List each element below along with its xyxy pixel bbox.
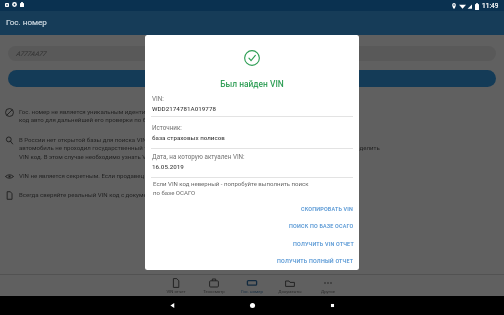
button[interactable]: Back bbox=[132, 296, 212, 315]
button[interactable]: Recents bbox=[292, 296, 372, 315]
button[interactable]: СКОПИРОВАТЬ VIN bbox=[145, 202, 359, 215]
staticText: ПОЛУЧИТЬ ПОЛНЫЙ ОТЧЕТ bbox=[277, 258, 354, 264]
button[interactable]: Другое bbox=[309, 277, 347, 294]
staticText: ПОИСК VIN ПО ГОС. НОМЕРУ bbox=[207, 75, 297, 82]
staticText: Источник: bbox=[152, 124, 182, 131]
staticText: база страховых полисов bbox=[152, 134, 225, 141]
staticText: Документы bbox=[271, 289, 309, 294]
staticText: 11:49 bbox=[482, 2, 499, 10]
staticText: ПОЛУЧИТЬ VIN ОТЧЕТ bbox=[293, 241, 354, 247]
staticText: Гос. номер bbox=[6, 17, 47, 26]
staticText: VIN не является секретным. Если продавец… bbox=[19, 172, 496, 179]
staticText: Если VIN код неверный - попробуйте выпол… bbox=[153, 180, 309, 197]
button[interactable]: ПОЛУЧИТЬ VIN ОТЧЕТ bbox=[145, 237, 359, 250]
staticText: В России нет открытой базы для поиска VI… bbox=[19, 136, 496, 160]
staticText: Техосмотр bbox=[195, 289, 233, 294]
staticText: WDD2174781A019778 bbox=[152, 105, 217, 112]
staticText: VIN отчет bbox=[157, 289, 195, 294]
button[interactable]: VIN отчет bbox=[157, 277, 195, 294]
staticText: Был найден VIN bbox=[145, 79, 359, 89]
button[interactable]: ПОИСК VIN ПО ГОС. НОМЕРУ bbox=[8, 70, 496, 87]
staticText: ПОИСК ПО БАЗЕ ОСАГО bbox=[289, 223, 354, 229]
staticText: Гос. номер не является уникальным иденти… bbox=[19, 108, 496, 123]
button[interactable]: Home bbox=[212, 296, 292, 315]
staticText: Всегда сверяйте реальный VIN код с докум… bbox=[19, 191, 496, 198]
button[interactable]: ПОИСК ПО БАЗЕ ОСАГО bbox=[145, 219, 359, 232]
staticText: VIN: bbox=[152, 95, 164, 102]
button[interactable]: Гос. номер bbox=[233, 277, 271, 294]
staticText: Гос. номер bbox=[233, 289, 271, 294]
staticText: Дата, на которую актуален VIN: bbox=[152, 153, 245, 160]
staticText: A777AA77 bbox=[16, 50, 46, 58]
button[interactable]: Документы bbox=[271, 277, 309, 294]
button[interactable]: A777AA77 bbox=[8, 46, 496, 61]
staticText: СКОПИРОВАТЬ VIN bbox=[301, 206, 354, 212]
staticText: Другое bbox=[309, 289, 347, 294]
staticText: 16.05.2019 bbox=[152, 163, 184, 170]
button[interactable]: Техосмотр bbox=[195, 277, 233, 294]
button[interactable]: ПОЛУЧИТЬ ПОЛНЫЙ ОТЧЕТ bbox=[145, 254, 359, 267]
